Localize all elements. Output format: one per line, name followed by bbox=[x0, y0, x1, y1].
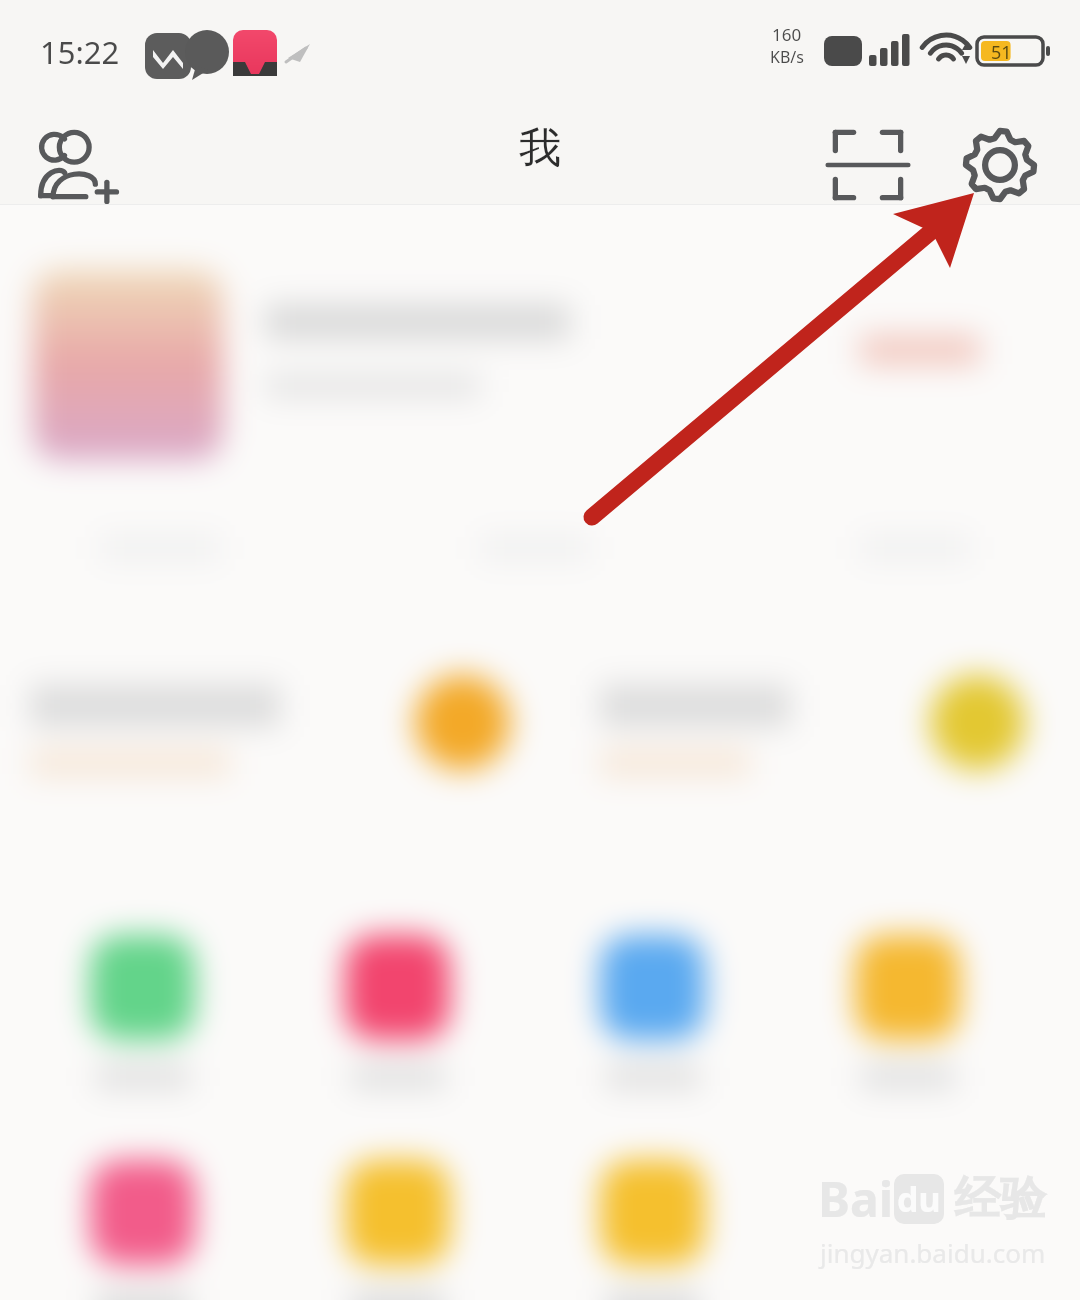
staticText: KB/s bbox=[770, 46, 804, 68]
staticText: 经验 bbox=[954, 1170, 1046, 1228]
button[interactable]: Settings bbox=[952, 117, 1048, 213]
staticText: jingyan.baidu.com bbox=[820, 1235, 1046, 1270]
button[interactable]: Scan QR code bbox=[820, 117, 916, 213]
staticText: 15:22 bbox=[40, 31, 120, 73]
staticText: 51 bbox=[991, 40, 1012, 65]
button[interactable]: Add friends bbox=[32, 117, 128, 213]
staticText: 160 bbox=[772, 23, 802, 46]
staticText: Bai bbox=[818, 1166, 894, 1231]
staticText: du bbox=[897, 1176, 941, 1222]
staticText: 我 bbox=[519, 122, 561, 175]
